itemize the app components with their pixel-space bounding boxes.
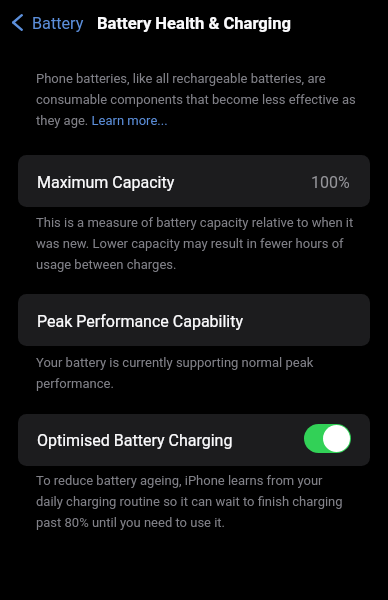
button[interactable]: Optimised Battery Charging bbox=[304, 424, 351, 453]
button[interactable]: Peak Performance Capability bbox=[18, 294, 370, 346]
button[interactable]: Optimised Battery Charging bbox=[18, 414, 370, 466]
staticText: Optimised Battery Charging bbox=[37, 431, 233, 450]
staticText: This is a measure of battery capacity re… bbox=[36, 215, 370, 272]
staticText: 100% bbox=[311, 173, 350, 192]
staticText: To reduce battery ageing, iPhone learns … bbox=[36, 473, 370, 530]
staticText: Battery Health & Charging bbox=[97, 14, 292, 33]
button[interactable]: Maximum Capacity bbox=[18, 155, 370, 207]
staticText: Your battery is currently supporting nor… bbox=[36, 355, 370, 391]
staticText: Peak Performance Capability bbox=[37, 312, 244, 331]
staticText: Maximum Capacity bbox=[37, 173, 175, 192]
staticText: Battery bbox=[32, 14, 84, 33]
button[interactable]: Battery bbox=[6, 8, 91, 39]
staticText: Phone batteries, like all rechargeable b… bbox=[36, 71, 370, 128]
